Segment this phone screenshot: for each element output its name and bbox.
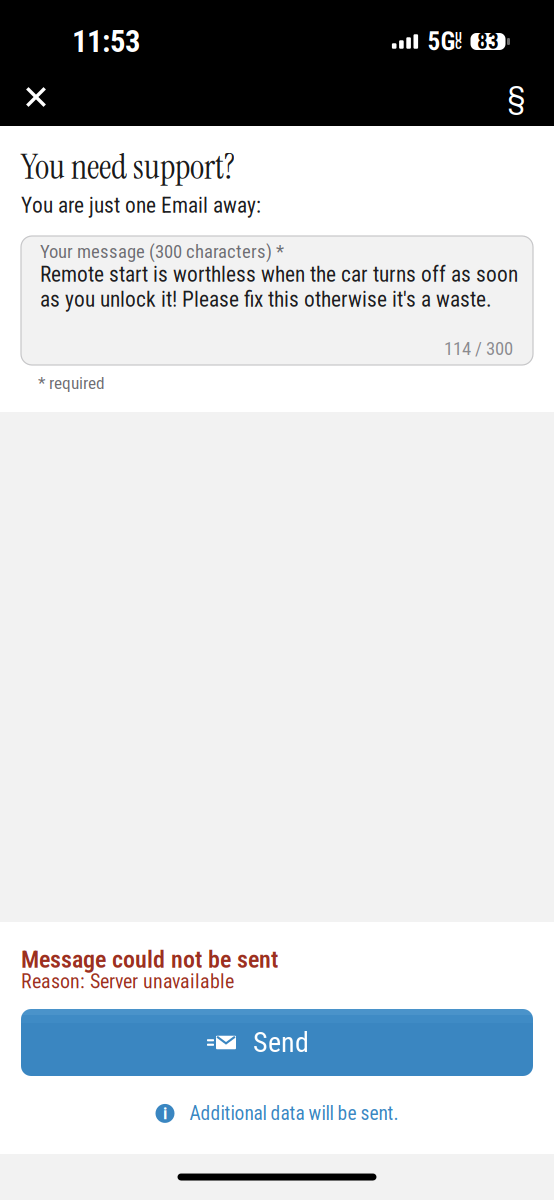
staticText: Your message (300 characters) * <box>40 241 284 262</box>
button[interactable]: Send <box>21 1009 533 1076</box>
staticText: You need support? <box>21 144 235 190</box>
staticText: 11:53 <box>72 23 140 59</box>
button[interactable]: Your message (300 characters) * <box>21 236 533 365</box>
staticText: Message could not be sent <box>21 945 278 973</box>
button[interactable]: i <box>151 1097 402 1130</box>
staticText: as you unlock it! Please fix this otherw… <box>40 287 492 312</box>
staticText: § <box>507 80 525 114</box>
staticText: You are just one Email away: <box>21 193 261 218</box>
staticText: C <box>455 38 462 52</box>
staticText: Send <box>253 1026 309 1059</box>
staticText: Remote start is worthless when the car t… <box>40 262 518 287</box>
staticText: Reason: Server unavailable <box>21 970 234 993</box>
staticText: 114 / 300 <box>444 338 513 359</box>
staticText: * required <box>38 373 105 393</box>
staticText: i <box>163 1103 167 1123</box>
button[interactable]: Close <box>0 68 72 126</box>
staticText: 83 <box>477 29 499 54</box>
staticText: Additional data will be sent. <box>189 1102 398 1125</box>
staticText: U <box>455 30 462 44</box>
button[interactable]: Legal notice <box>479 68 554 126</box>
staticText: 5G <box>427 27 455 56</box>
